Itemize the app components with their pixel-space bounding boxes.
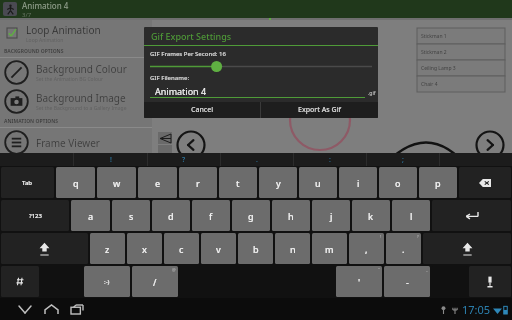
staticText: v [216,243,221,255]
staticText: Animation 4 [155,85,207,97]
button[interactable]: ' [336,266,382,297]
staticText: @ [172,267,176,272]
button[interactable]: :-) [84,266,130,297]
button[interactable]: f [192,200,230,231]
button[interactable]: c [164,233,199,264]
button[interactable]: Switch keyboard [1,266,39,297]
staticText: t [236,177,240,189]
staticText: ? [182,155,186,165]
staticText: : [329,155,331,165]
button[interactable]: g [232,200,270,231]
button[interactable]: l [392,200,430,231]
staticText: d [168,210,174,222]
staticText: o [395,177,401,189]
button[interactable]: r [179,167,217,198]
button[interactable]: Background Image [0,87,152,116]
staticText: Cancel [191,105,214,115]
staticText: r [196,177,200,189]
staticText: m [325,243,334,255]
staticText: . [256,155,258,165]
button[interactable]: Next frame [474,129,506,161]
button[interactable]: ! [74,153,147,166]
button[interactable]: Tab [1,167,54,198]
button[interactable]: k [352,200,390,231]
button[interactable]: u [299,167,337,198]
staticText: e [155,177,161,189]
button[interactable]: z [90,233,125,264]
staticText: a [88,210,94,222]
button[interactable]: , [349,233,384,264]
staticText: Gif Export Settings [151,30,232,42]
button[interactable]: / [132,266,178,297]
staticText: ? [417,234,419,239]
button[interactable]: w [97,167,136,198]
staticText: f [209,210,213,222]
staticText: _ [426,267,428,272]
staticText: n [290,243,296,255]
button[interactable]: x [127,233,162,264]
button[interactable]: Enter [432,200,511,231]
staticText: GIF Filename: [150,74,190,82]
button[interactable]: v [201,233,236,264]
button[interactable]: h [272,200,310,231]
button[interactable]: y [259,167,297,198]
staticText: Animation 4 [22,0,69,11]
button[interactable]: : [294,153,366,166]
button[interactable]: Chair 4 [417,76,505,92]
button[interactable]: m [312,233,347,264]
staticText: l [410,210,413,222]
button[interactable]: Stickman 1 [417,28,505,44]
button[interactable]: e [138,167,177,198]
staticText: w [113,177,121,189]
button[interactable]: - [384,266,430,297]
button[interactable]: Shift [1,233,88,264]
button[interactable]: d [152,200,190,231]
staticText: y [276,177,281,189]
button[interactable]: Delete [459,167,511,198]
staticText: ; [402,155,404,165]
button[interactable]: Frames per second slider [144,61,378,72]
button[interactable]: n [275,233,310,264]
button[interactable]: p [419,167,457,198]
button[interactable]: Hide keyboard [12,298,38,320]
button[interactable]: b [238,233,273,264]
button[interactable]: j [312,200,350,231]
button[interactable]: ?123 [1,200,69,231]
button[interactable]: Recent apps [64,298,90,320]
button[interactable]: i [339,167,377,198]
staticText: s [129,210,134,222]
button[interactable]: . [386,233,421,264]
staticText: p [435,177,441,189]
staticText: i [357,177,360,189]
staticText: , [365,243,368,255]
button[interactable]: Previous frame [175,129,207,161]
button[interactable]: Background Colour [0,58,152,87]
staticText: Background Colour [36,62,127,76]
button[interactable]: Animation 4 [144,84,378,97]
button[interactable]: Flip [158,132,172,144]
button[interactable]: Shift [423,233,511,264]
button[interactable]: a [71,200,110,231]
button[interactable]: Rotate [158,145,172,155]
button[interactable]: Cancel [144,102,260,118]
button[interactable]: t [219,167,257,198]
button[interactable]: s [112,200,150,231]
staticText: Stickman 2 [421,49,447,56]
button[interactable]: Ceiling Lamp 3 [417,60,505,76]
staticText: Frame Viewer [36,136,100,150]
staticText: 17:05 [462,302,491,317]
staticText: :-) [104,278,110,286]
button[interactable]: Loop Animation [0,20,152,46]
button[interactable]: Home [38,298,64,320]
button[interactable]: Export As Gif [261,102,378,118]
button[interactable]: ? [148,153,220,166]
button[interactable]: Frame Viewer [0,128,152,157]
button[interactable]: Stickman 2 [417,44,505,60]
button[interactable]: ; [367,153,439,166]
button[interactable]: o [379,167,417,198]
button[interactable]: q [56,167,95,198]
button[interactable]: Voice input [469,266,511,297]
